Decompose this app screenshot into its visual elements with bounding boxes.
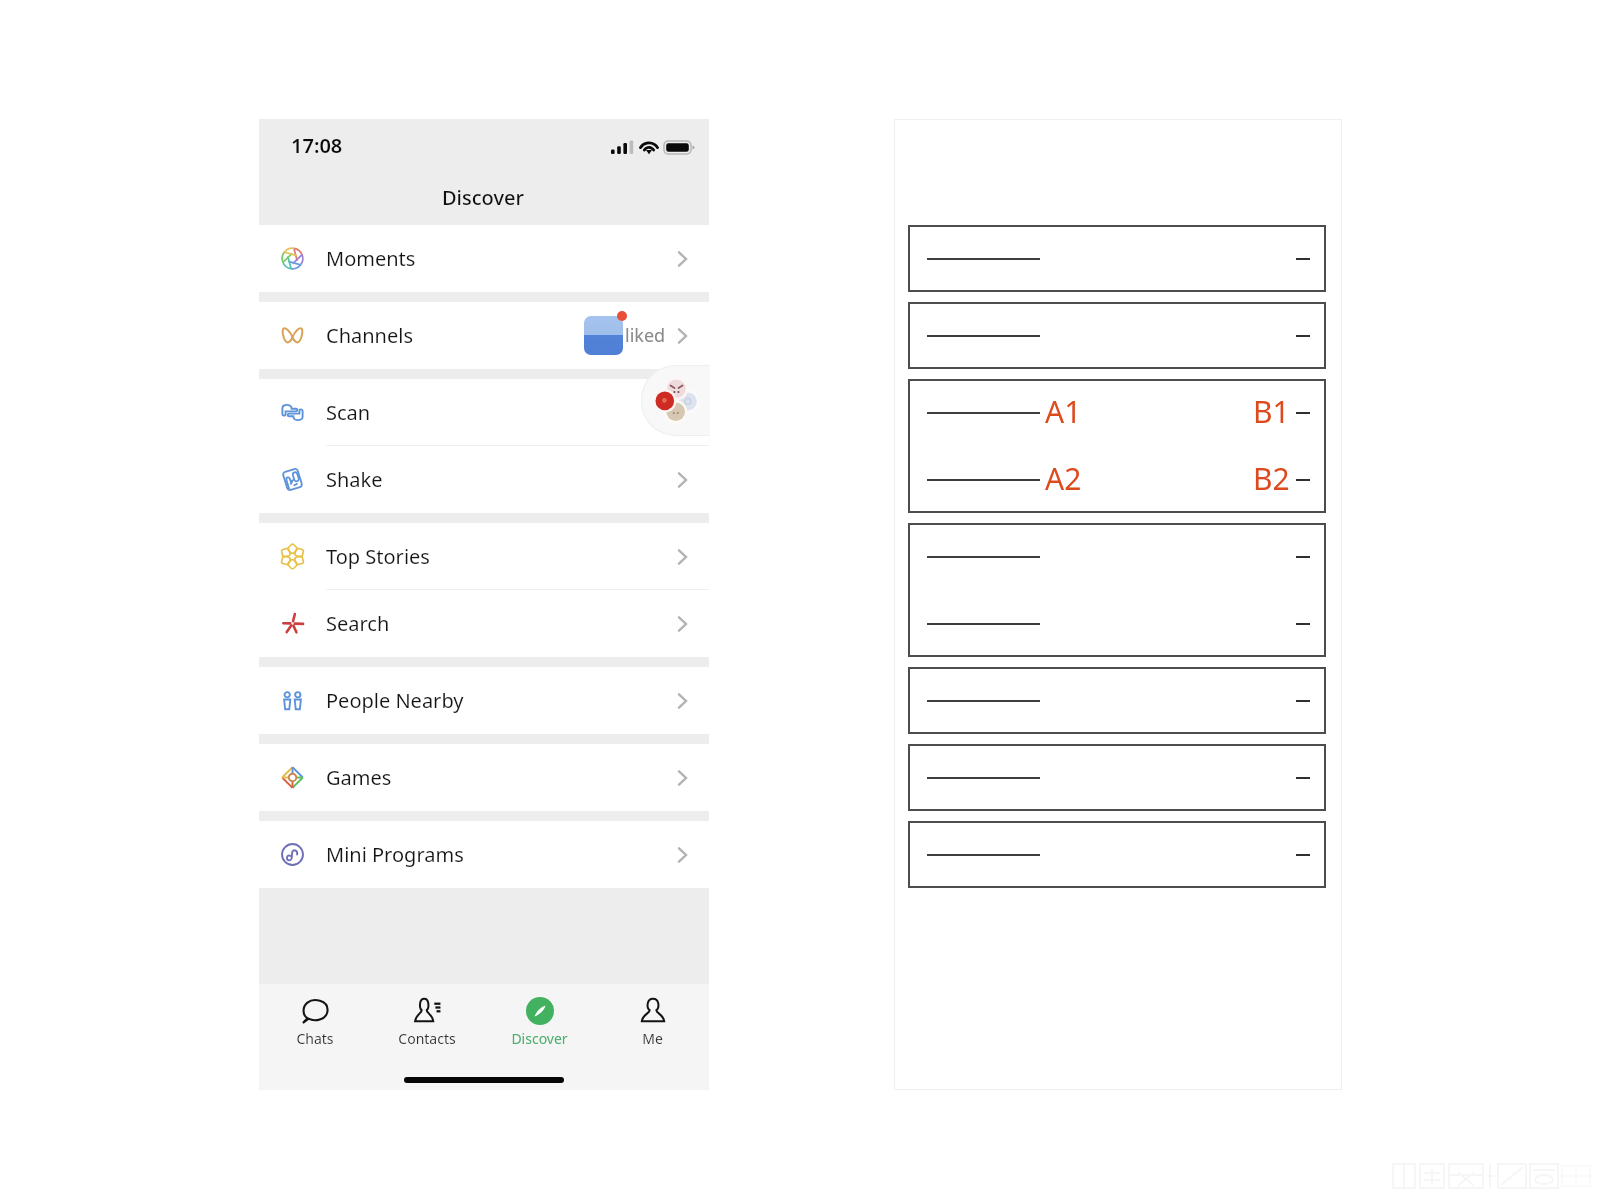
button[interactable]: Search	[259, 590, 709, 657]
button[interactable]: Scan	[259, 379, 709, 446]
staticText: A1	[1045, 391, 1082, 432]
button[interactable]: Chats	[259, 984, 371, 1056]
button[interactable]: Mini Programs	[259, 821, 709, 888]
staticText: Contacts	[398, 1029, 456, 1048]
staticText: Mini Programs	[326, 841, 464, 868]
staticText: Discover	[442, 184, 524, 211]
button[interactable]: Sticker reactions	[641, 365, 711, 436]
staticText: Search	[326, 610, 390, 637]
staticText: Moments	[326, 245, 416, 272]
staticText: Games	[326, 764, 392, 791]
staticText: B2	[1253, 458, 1290, 499]
button[interactable]: Channels	[259, 302, 709, 369]
staticText: Me	[642, 1029, 663, 1048]
staticText: B1	[1253, 391, 1290, 432]
button[interactable]: Moments	[259, 225, 709, 292]
staticText: liked	[625, 323, 666, 348]
staticText: Scan	[326, 399, 371, 426]
button[interactable]: Shake	[259, 446, 709, 513]
staticText: People Nearby	[326, 687, 464, 714]
staticText: Channels	[326, 322, 413, 349]
button[interactable]: Discover	[483, 984, 596, 1056]
button[interactable]: Games	[259, 744, 709, 811]
button[interactable]: Contacts	[371, 984, 483, 1056]
staticText: Top Stories	[326, 543, 430, 570]
button[interactable]: People Nearby	[259, 667, 709, 734]
staticText: Discover	[511, 1029, 568, 1048]
button[interactable]: Me	[596, 984, 709, 1056]
staticText: A2	[1045, 458, 1082, 499]
button[interactable]: Top Stories	[259, 523, 709, 590]
staticText: 17:08	[291, 132, 343, 159]
staticText: Shake	[326, 466, 383, 493]
staticText: Chats	[296, 1029, 334, 1048]
